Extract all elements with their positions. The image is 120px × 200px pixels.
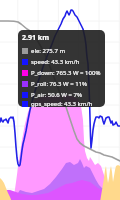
staticText: 2.91 km — [22, 33, 49, 43]
staticText: gps_speed: 43.3 km/h — [31, 100, 93, 107]
staticText: speed: 43.3 km/h — [31, 58, 80, 66]
staticText: P_roll: 76.3 W = 11% — [31, 80, 87, 88]
staticText: P_down: 765.3 W = 100% — [31, 69, 101, 77]
button[interactable]: 2.91 km — [18, 30, 105, 107]
staticText: P_air: 50.6 W = 7% — [31, 91, 82, 99]
staticText: ele: 275.7 m — [31, 47, 65, 55]
